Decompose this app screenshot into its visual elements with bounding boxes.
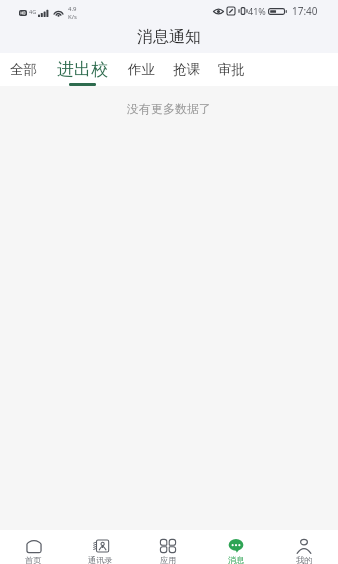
button[interactable]: 全部 [1,53,46,86]
staticText: 17:40 [292,4,318,18]
button[interactable]: 审批 [209,53,254,86]
staticText: 没有更多数据了 [127,101,211,116]
button[interactable]: 应用 [134,530,202,564]
staticText: 消息 [228,555,245,564]
button[interactable]: 作业 [119,53,164,86]
staticText: 首页 [25,555,42,564]
staticText: 通讯录 [88,555,113,564]
staticText: 41% [248,5,266,17]
staticText: 应用 [160,555,177,564]
button[interactable]: 首页 [0,530,67,564]
staticText: 4.9 [68,5,77,13]
staticText: 全部 [10,61,37,78]
button[interactable]: 抢课 [164,53,209,86]
staticText: 消息通知 [137,27,201,47]
staticText: 作业 [128,61,155,78]
staticText: 我的 [296,555,313,564]
staticText: 4G [29,8,37,15]
staticText: 进出校 [57,59,108,80]
staticText: K/s [68,13,77,21]
button[interactable]: 消息 [202,530,270,564]
button[interactable]: 进出校 [46,53,119,86]
staticText: 审批 [218,61,245,78]
button[interactable]: 通讯录 [67,530,134,564]
button[interactable]: 我的 [270,530,338,564]
staticText: 抢课 [173,61,200,78]
